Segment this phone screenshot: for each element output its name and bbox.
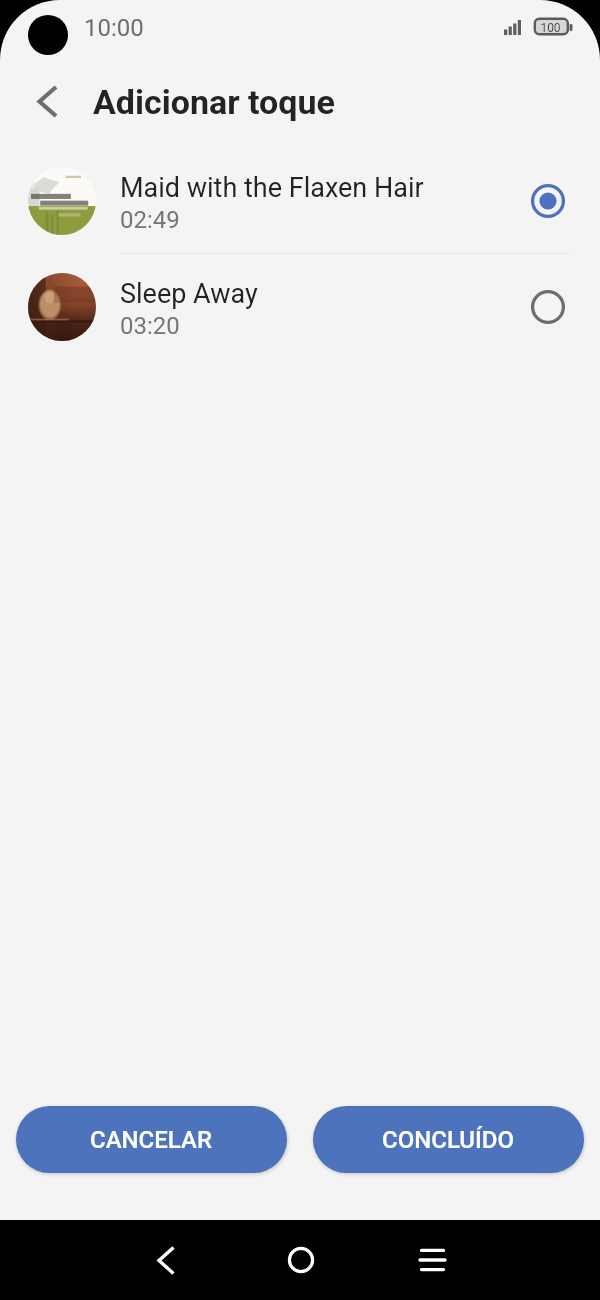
staticText: CANCELAR bbox=[90, 1126, 213, 1154]
staticText: 02:49 bbox=[120, 206, 180, 234]
staticText: 10:00 bbox=[84, 14, 144, 42]
staticText: CONCLUÍDO bbox=[382, 1126, 515, 1154]
button[interactable]: CONCLUÍDO bbox=[313, 1106, 584, 1173]
button[interactable]: Select ringtone bbox=[518, 171, 578, 231]
button[interactable]: Back bbox=[21, 75, 73, 127]
staticText: Maid with the Flaxen Hair bbox=[120, 172, 424, 204]
button[interactable]: Back bbox=[141, 1235, 191, 1285]
staticText: Adicionar toque bbox=[93, 82, 335, 122]
button[interactable]: Home bbox=[276, 1235, 326, 1285]
button[interactable]: Select ringtone bbox=[518, 277, 578, 337]
button[interactable]: Maid with the Flaxen Hair bbox=[0, 148, 600, 254]
staticText: 03:20 bbox=[120, 312, 180, 340]
staticText: 100 bbox=[534, 21, 567, 35]
button[interactable]: CANCELAR bbox=[16, 1106, 287, 1173]
button[interactable]: Recent apps bbox=[408, 1235, 458, 1285]
staticText: Sleep Away bbox=[120, 278, 258, 310]
button[interactable]: Sleep Away bbox=[0, 254, 600, 360]
